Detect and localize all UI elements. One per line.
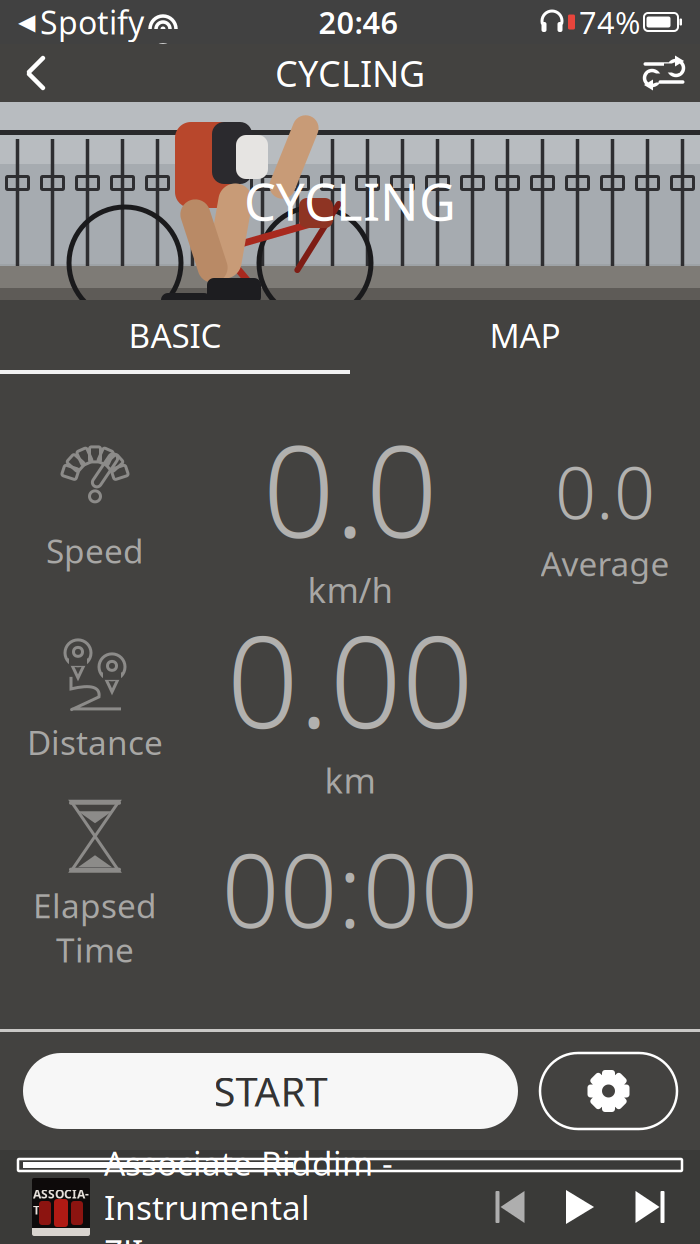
button[interactable]: Next track [628,1185,672,1229]
staticText: km/h [307,567,392,613]
button[interactable]: MAP [350,300,700,370]
staticText: 0.0 [555,444,655,539]
staticText: Time [56,927,134,972]
staticText: Associate Riddim - Instrumental [104,1141,393,1229]
staticText: BASIC [128,313,221,357]
staticText: CYCLING [275,49,425,97]
staticText: 74% [579,2,640,42]
staticText: 0.00 [226,595,473,763]
button[interactable]: Switch activity [634,44,694,102]
button[interactable]: Settings [540,1053,677,1129]
staticText: Speed [46,528,144,573]
button[interactable]: BASIC [0,300,350,370]
staticText: START [213,1064,327,1117]
staticText: 20:46 [318,2,398,42]
button[interactable]: START [23,1053,518,1129]
staticText: ASSOCIATE [33,1186,89,1218]
staticText: Average [540,541,669,585]
button[interactable]: Previous track [488,1185,532,1229]
staticText: Elapsed [33,883,157,927]
staticText: MAP [489,313,560,357]
staticText: CYCLING [244,167,456,235]
staticText: 0.0 [262,404,437,573]
button[interactable]: Back [6,44,66,102]
staticText: 00:00 [221,821,478,956]
button[interactable]: Play [558,1185,602,1229]
staticText: km [324,757,375,803]
staticText: ◀ [18,9,35,35]
staticText: ZJIce [104,1229,178,1244]
staticText: Distance [27,720,163,764]
staticText: Spotify [40,1,144,43]
